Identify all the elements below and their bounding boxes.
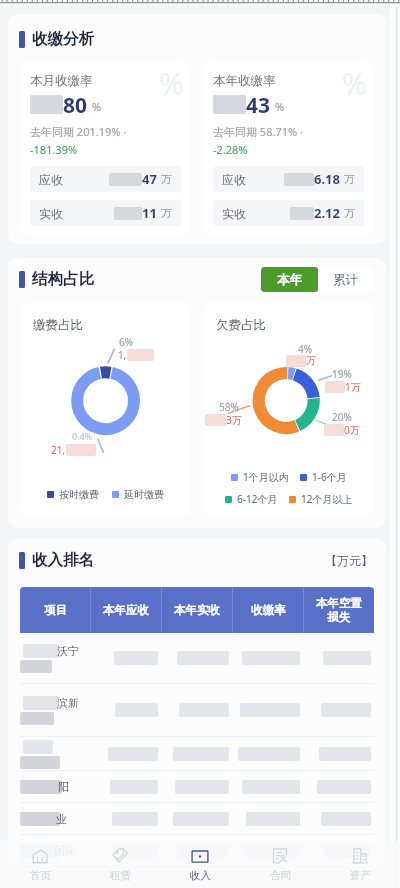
- staticText: 58%: [219, 400, 239, 414]
- button[interactable]: Income: [160, 841, 240, 888]
- staticText: 欠费占比: [216, 317, 266, 333]
- button[interactable]: 国际: [20, 835, 374, 867]
- staticText: 47: [142, 170, 157, 188]
- staticText: 沃宁: [57, 644, 79, 658]
- button[interactable]: 本年: [261, 267, 318, 292]
- staticText: 12个月以上: [301, 492, 353, 506]
- staticText: 6.18: [314, 170, 340, 188]
- staticText: 收缴率: [251, 603, 286, 617]
- staticText: 万: [344, 172, 355, 186]
- staticText: 阳: [58, 780, 69, 794]
- staticText: 业: [56, 812, 67, 826]
- button[interactable]: 沃宁: [20, 633, 374, 684]
- staticText: 实收: [222, 206, 246, 221]
- button[interactable]: 累计: [318, 267, 373, 292]
- staticText: 结构占比: [32, 269, 94, 289]
- staticText: 资产: [350, 869, 371, 882]
- staticText: 3万: [226, 413, 242, 427]
- staticText: 收缴分析: [32, 29, 94, 49]
- staticText: 20%: [332, 410, 352, 424]
- staticText: 延时缴费: [124, 488, 164, 501]
- staticText: %: [92, 99, 102, 114]
- button[interactable]: 阳: [20, 771, 374, 803]
- staticText: 【万元】: [325, 553, 373, 568]
- staticText: 2.12: [314, 204, 340, 222]
- staticText: 租赁: [110, 869, 131, 882]
- staticText: 收入: [190, 869, 211, 882]
- staticText: 缴费占比: [33, 317, 83, 333]
- staticText: 按时缴费: [59, 488, 99, 501]
- staticText: -2.28%: [213, 142, 248, 157]
- staticText: 滨新: [57, 696, 79, 710]
- staticText: 43: [246, 91, 271, 115]
- staticText: 本年应收: [103, 603, 149, 617]
- staticText: 21,: [51, 443, 66, 457]
- staticText: %: [159, 63, 184, 104]
- staticText: 本年空置 损失: [316, 596, 362, 625]
- staticText: 本月收缴率: [30, 73, 93, 89]
- staticText: 累计: [333, 272, 358, 288]
- button[interactable]: 业: [20, 803, 374, 835]
- staticText: 本年: [277, 272, 302, 288]
- staticText: 6%: [119, 335, 134, 349]
- staticText: 国际: [54, 844, 76, 858]
- staticText: 19%: [332, 367, 352, 381]
- button[interactable]: 滨新: [20, 684, 374, 737]
- staticText: 万: [306, 354, 316, 367]
- staticText: %: [275, 99, 285, 114]
- staticText: 0.4%: [72, 430, 93, 442]
- button[interactable]: Home: [0, 841, 80, 888]
- staticText: 6-12个月: [237, 492, 278, 506]
- staticText: 万: [161, 172, 172, 186]
- staticText: 首页: [30, 869, 51, 882]
- staticText: 项目: [44, 603, 67, 617]
- button[interactable]: [20, 737, 374, 771]
- staticText: 1个月以内: [243, 470, 289, 484]
- staticText: 万: [161, 206, 172, 220]
- staticText: 去年同期 201.19% ·: [30, 124, 127, 139]
- staticText: 万: [344, 206, 355, 220]
- staticText: 合同: [270, 869, 291, 882]
- button[interactable]: Assets: [320, 841, 400, 888]
- staticText: 本年收缴率: [213, 73, 276, 89]
- staticText: 0万: [344, 423, 360, 437]
- staticText: -181.39%: [30, 142, 78, 157]
- staticText: 4%: [298, 342, 313, 356]
- staticText: 应收: [39, 172, 63, 187]
- staticText: 11: [142, 204, 157, 222]
- staticText: 1-6个月: [312, 470, 347, 484]
- button[interactable]: Contract: [240, 841, 320, 888]
- staticText: %: [342, 63, 367, 104]
- staticText: 本年实收: [174, 603, 220, 617]
- staticText: 1,: [118, 348, 127, 362]
- staticText: 1万: [345, 380, 361, 394]
- staticText: 80: [63, 91, 88, 115]
- staticText: 应收: [222, 172, 246, 187]
- button[interactable]: Lease: [80, 841, 160, 888]
- staticText: 收入排名: [32, 550, 94, 570]
- staticText: 实收: [39, 206, 63, 221]
- staticText: 去年同期 58.71% ·: [213, 124, 303, 139]
